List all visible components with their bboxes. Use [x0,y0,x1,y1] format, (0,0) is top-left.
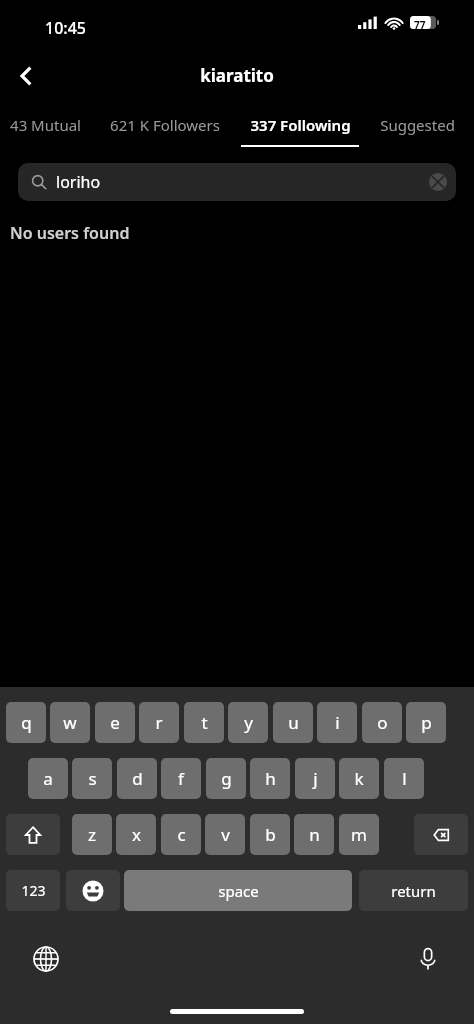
button[interactable]: r [139,702,179,743]
staticText: space [218,881,259,901]
staticText: n [309,823,320,846]
button[interactable]: Voice input [406,937,450,981]
button[interactable]: 43 Mutual [0,106,90,150]
staticText: return [391,881,436,901]
button[interactable]: o [362,702,402,743]
button[interactable]: p [406,702,446,743]
button[interactable]: y [228,702,268,743]
button[interactable]: u [273,702,313,743]
button[interactable]: return [359,870,468,911]
button[interactable]: 621 K Followers [90,106,240,150]
button[interactable]: Suggested [360,106,474,150]
button[interactable]: 337 Following [240,106,360,150]
button[interactable]: loriho [18,163,456,201]
button[interactable]: t [184,702,224,743]
staticText: o [377,711,388,734]
staticText: m [351,823,367,846]
button[interactable]: space [124,870,352,911]
button[interactable]: s [72,758,112,799]
staticText: p [421,711,432,734]
button[interactable]: Back [2,52,50,100]
staticText: y [244,711,253,734]
button[interactable]: l [384,758,424,799]
button[interactable]: k [339,758,379,799]
staticText: f [178,767,184,790]
button[interactable]: h [250,758,290,799]
button[interactable]: d [117,758,157,799]
staticText: 123 [21,881,46,900]
staticText: j [313,767,318,790]
staticText: q [21,711,32,734]
button[interactable]: q [6,702,46,743]
staticText: g [221,767,232,790]
staticText: x [132,823,141,846]
button[interactable]: w [50,702,90,743]
button[interactable]: v [205,814,245,855]
staticText: z [88,823,96,846]
button[interactable]: j [295,758,335,799]
staticText: s [88,767,97,790]
button[interactable]: Shift [6,814,60,855]
button[interactable]: f [161,758,201,799]
staticText: e [110,711,120,734]
staticText: b [265,823,276,846]
button[interactable]: c [161,814,201,855]
staticText: 621 K Followers [110,115,220,135]
staticText: 10:45 [45,17,86,39]
staticText: r [155,711,163,734]
staticText: 337 Following [250,115,351,135]
button[interactable]: Switch keyboard language [24,937,68,981]
staticText: Suggested [380,115,455,135]
staticText: d [132,767,143,790]
staticText: w [63,711,77,734]
button[interactable]: g [206,758,246,799]
staticText: t [201,711,208,734]
staticText: h [265,767,276,790]
staticText: l [402,767,407,790]
button[interactable]: n [294,814,334,855]
button[interactable]: a [28,758,68,799]
button[interactable]: Emoji [66,870,120,911]
staticText: 77 [414,18,426,32]
staticText: kiaratito [0,64,474,87]
button[interactable]: x [116,814,156,855]
staticText: 43 Mutual [10,115,81,135]
button[interactable]: 123 [6,870,60,911]
staticText: a [43,767,53,790]
staticText: No users found [10,222,130,244]
button[interactable]: z [72,814,112,855]
button[interactable]: Clear search [426,170,450,194]
button[interactable]: m [339,814,379,855]
staticText: v [221,823,230,846]
staticText: c [177,823,186,846]
staticText: u [288,711,299,734]
staticText: k [354,767,364,790]
staticText: i [335,711,340,734]
button[interactable]: Backspace [414,814,468,855]
staticText: loriho [56,171,101,193]
button[interactable]: b [250,814,290,855]
button[interactable]: e [95,702,135,743]
button[interactable]: i [317,702,357,743]
